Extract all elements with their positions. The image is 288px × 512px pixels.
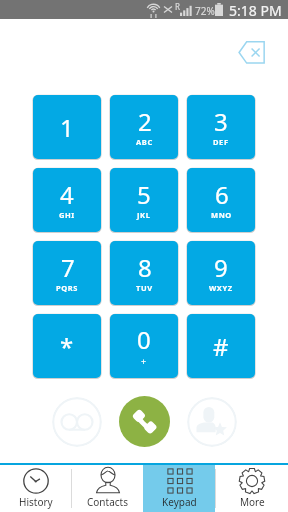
staticText: MNO bbox=[211, 210, 232, 220]
staticText: 5:18 PM bbox=[229, 1, 282, 20]
button[interactable]: # bbox=[187, 314, 255, 378]
staticText: TUV bbox=[136, 283, 153, 293]
button[interactable]: More bbox=[216, 465, 288, 512]
staticText: * bbox=[60, 330, 74, 363]
staticText: PQRS bbox=[56, 283, 79, 293]
staticText: 72% bbox=[195, 4, 215, 18]
button[interactable]: Contacts bbox=[72, 465, 143, 512]
button[interactable]: 3 bbox=[187, 95, 255, 159]
button[interactable]: 7 bbox=[33, 241, 101, 305]
staticText: Contacts bbox=[87, 495, 128, 509]
button[interactable]: Add contact bbox=[187, 397, 237, 447]
staticText: R bbox=[175, 1, 180, 12]
staticText: Keypad bbox=[162, 495, 197, 509]
staticText: More bbox=[240, 495, 265, 509]
button[interactable]: 4 bbox=[33, 168, 101, 232]
button[interactable]: Call bbox=[119, 396, 170, 447]
staticText: # bbox=[213, 330, 229, 363]
button[interactable]: * bbox=[33, 314, 101, 378]
staticText: DEF bbox=[213, 137, 229, 147]
staticText: 9 bbox=[214, 251, 228, 284]
button[interactable]: Backspace bbox=[233, 35, 271, 73]
staticText: GHI bbox=[59, 210, 75, 220]
button[interactable]: 2 bbox=[110, 95, 178, 159]
staticText: 4 bbox=[60, 178, 74, 211]
staticText: 1 bbox=[60, 111, 74, 144]
button[interactable]: 8 bbox=[110, 241, 178, 305]
staticText: History bbox=[19, 495, 53, 509]
button[interactable]: 0 bbox=[110, 314, 178, 378]
staticText: + bbox=[141, 355, 147, 367]
button[interactable]: Voicemail bbox=[52, 397, 102, 447]
staticText: 6 bbox=[215, 178, 229, 211]
staticText: 2 bbox=[138, 105, 152, 138]
button[interactable]: 9 bbox=[187, 241, 255, 305]
staticText: 8 bbox=[138, 251, 152, 284]
button[interactable]: 5 bbox=[110, 168, 178, 232]
staticText: 0 bbox=[137, 323, 151, 356]
button[interactable]: 1 bbox=[33, 95, 101, 159]
staticText: WXYZ bbox=[209, 283, 233, 293]
button[interactable]: Keypad bbox=[143, 465, 215, 512]
staticText: ABC bbox=[136, 137, 153, 147]
staticText: JKL bbox=[137, 210, 151, 220]
button[interactable]: History bbox=[0, 465, 71, 512]
staticText: 3 bbox=[214, 105, 228, 138]
button[interactable]: 6 bbox=[187, 168, 255, 232]
staticText: 5 bbox=[137, 178, 151, 211]
staticText: 7 bbox=[61, 251, 75, 284]
